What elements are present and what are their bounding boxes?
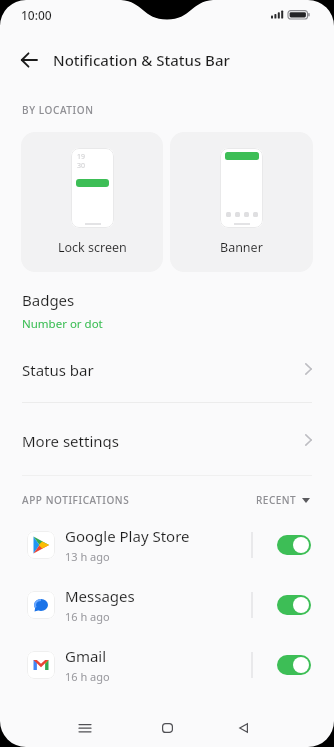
- staticText: Notification & Status Bar: [53, 50, 230, 70]
- button[interactable]: [226, 711, 260, 745]
- staticText: BY LOCATION: [22, 103, 94, 117]
- staticText: More settings: [22, 431, 119, 449]
- button[interactable]: [12, 43, 46, 77]
- staticText: 10:00: [21, 7, 52, 23]
- button[interactable]: [277, 595, 311, 615]
- button[interactable]: Google Play Store: [0, 515, 334, 575]
- staticText: Lock screen: [58, 239, 127, 256]
- staticText: Number or dot: [22, 316, 103, 332]
- staticText: Google Play Store: [65, 526, 190, 546]
- button[interactable]: [277, 535, 311, 555]
- staticText: RECENT: [256, 493, 297, 507]
- button[interactable]: More settings: [0, 431, 334, 449]
- staticText: 19 30: [77, 152, 86, 170]
- staticText: Messages: [65, 586, 135, 606]
- staticText: Banner: [220, 239, 263, 256]
- button[interactable]: 19 30: [21, 132, 163, 272]
- staticText: APP NOTIFICATIONS: [22, 493, 130, 507]
- button[interactable]: Messages: [0, 575, 334, 635]
- button[interactable]: RECENT: [256, 493, 310, 507]
- button[interactable]: Status bar: [0, 360, 334, 378]
- button[interactable]: [68, 711, 102, 745]
- button[interactable]: [277, 655, 311, 675]
- staticText: Gmail: [65, 646, 107, 666]
- button[interactable]: Badges: [0, 272, 334, 332]
- staticText: 13 h ago: [65, 549, 110, 564]
- staticText: 16 h ago: [65, 669, 110, 684]
- staticText: Badges: [22, 290, 75, 310]
- button[interactable]: Gmail: [0, 635, 334, 695]
- button[interactable]: [150, 711, 184, 745]
- button[interactable]: Banner: [170, 132, 313, 272]
- staticText: Status bar: [22, 360, 94, 378]
- staticText: 16 h ago: [65, 609, 110, 624]
